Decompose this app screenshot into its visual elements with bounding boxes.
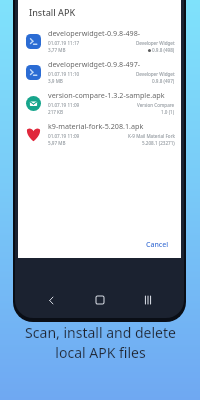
button[interactable]: k9-material-fork-5.208.1.apk xyxy=(18,118,181,149)
staticText: 5,97 MB xyxy=(48,140,66,146)
staticText: Scan, install and delete xyxy=(25,323,176,342)
button[interactable]: Home xyxy=(88,288,112,312)
staticText: 3,77 MB xyxy=(48,47,66,53)
button[interactable]: developerwidget-0.9.8-497-release.apk xyxy=(18,56,181,87)
staticText: Developer Widget xyxy=(136,71,175,77)
staticText: 1.0 (1) xyxy=(161,109,175,115)
button[interactable]: Back xyxy=(39,288,63,312)
button[interactable]: version-compare-1.3.2-sample.apk xyxy=(18,87,181,118)
button[interactable]: Cancel xyxy=(140,237,175,253)
staticText: Install APK xyxy=(29,6,76,18)
staticText: Developer Widget xyxy=(136,40,175,46)
staticText: k9-material-fork-5.208.1.apk xyxy=(48,121,144,131)
staticText: version-compare-1.3.2-sample.apk xyxy=(48,90,165,100)
staticText: 01.07.19 11:10 xyxy=(48,71,80,77)
staticText: developerwidget-0.9.8-498-debug.apk xyxy=(48,28,175,38)
staticText: 5.208.1 (23271) xyxy=(142,140,175,146)
staticText: 3,9 MB xyxy=(48,78,63,84)
staticText: Cancel xyxy=(146,240,169,250)
staticText: 0.9.8 (498) xyxy=(152,47,175,53)
staticText: Version Compare xyxy=(137,102,175,108)
button[interactable]: developerwidget-0.9.8-498-debug.apk xyxy=(18,25,181,56)
staticText: K-9 Mail Material Fork xyxy=(128,133,175,139)
staticText: developerwidget-0.9.8-497-release.apk xyxy=(48,59,175,69)
staticText: 217 KB xyxy=(48,109,63,115)
staticText: 01.07.19 11:09 xyxy=(48,133,80,139)
staticText: local APK files xyxy=(55,343,146,362)
staticText: 0.9.8 (497) xyxy=(152,78,175,84)
staticText: 01.07.19 11:17 xyxy=(48,40,80,46)
button[interactable]: Recents xyxy=(136,288,160,312)
staticText: 01.07.19 11:09 xyxy=(48,102,80,108)
